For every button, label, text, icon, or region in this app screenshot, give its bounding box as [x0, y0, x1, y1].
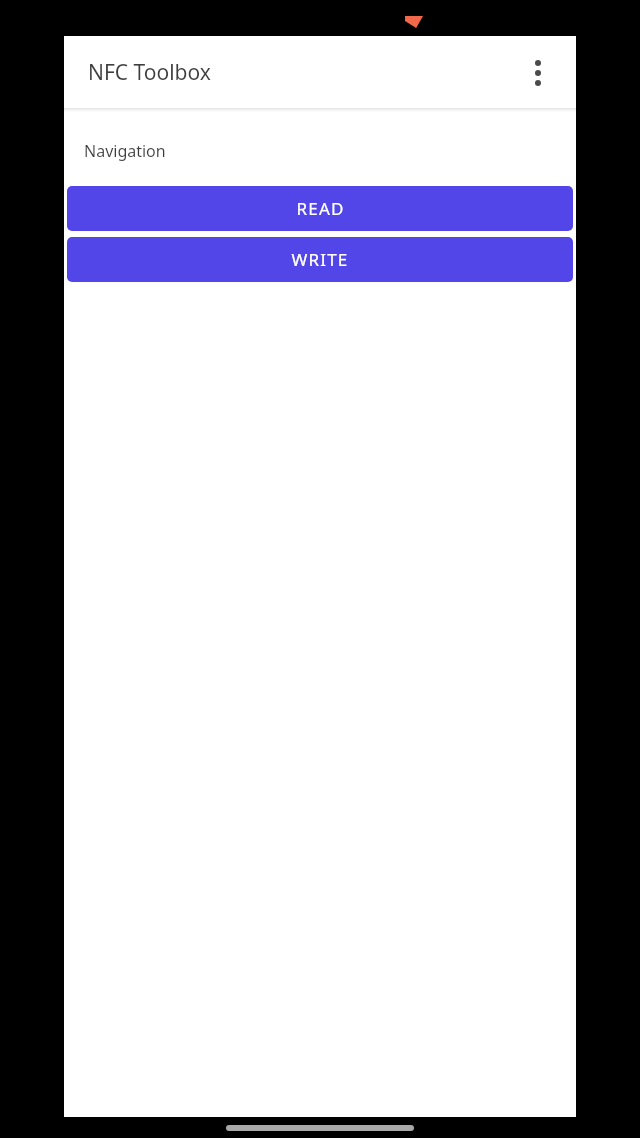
staticText: NFC Toolbox [88, 58, 211, 87]
staticText: WRITE [291, 248, 349, 271]
button[interactable]: More options [514, 49, 562, 97]
staticText: READ [296, 197, 345, 220]
button[interactable]: WRITE [67, 237, 573, 282]
button[interactable]: READ [67, 186, 573, 231]
staticText: Navigation [84, 140, 166, 162]
